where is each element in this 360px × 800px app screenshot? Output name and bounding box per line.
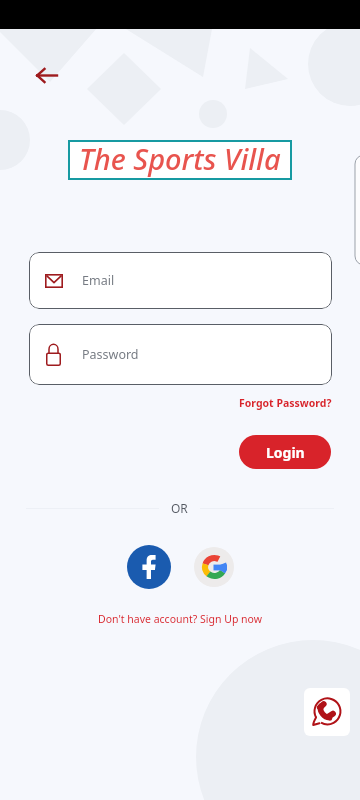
staticText: Login: [266, 443, 305, 462]
staticText: The Sports Villa: [79, 139, 281, 178]
staticText: Password: [82, 346, 139, 363]
button[interactable]: Login: [239, 435, 331, 469]
staticText: Don't have account? Sign Up now: [98, 612, 262, 626]
staticText: Email: [82, 272, 115, 289]
staticText: OR: [171, 500, 188, 516]
staticText: Forgot Password?: [239, 396, 332, 410]
button[interactable]: Forgot Password?: [237, 394, 334, 412]
button[interactable]: Sign in with Google: [194, 547, 234, 587]
button[interactable]: Email: [29, 252, 332, 309]
button[interactable]: Back: [28, 62, 64, 88]
button[interactable]: Don't have account? Sign Up now: [96, 610, 264, 628]
button[interactable]: Password: [29, 324, 332, 385]
button[interactable]: Chat on WhatsApp: [304, 688, 350, 736]
button[interactable]: Sign in with Facebook: [127, 545, 171, 589]
